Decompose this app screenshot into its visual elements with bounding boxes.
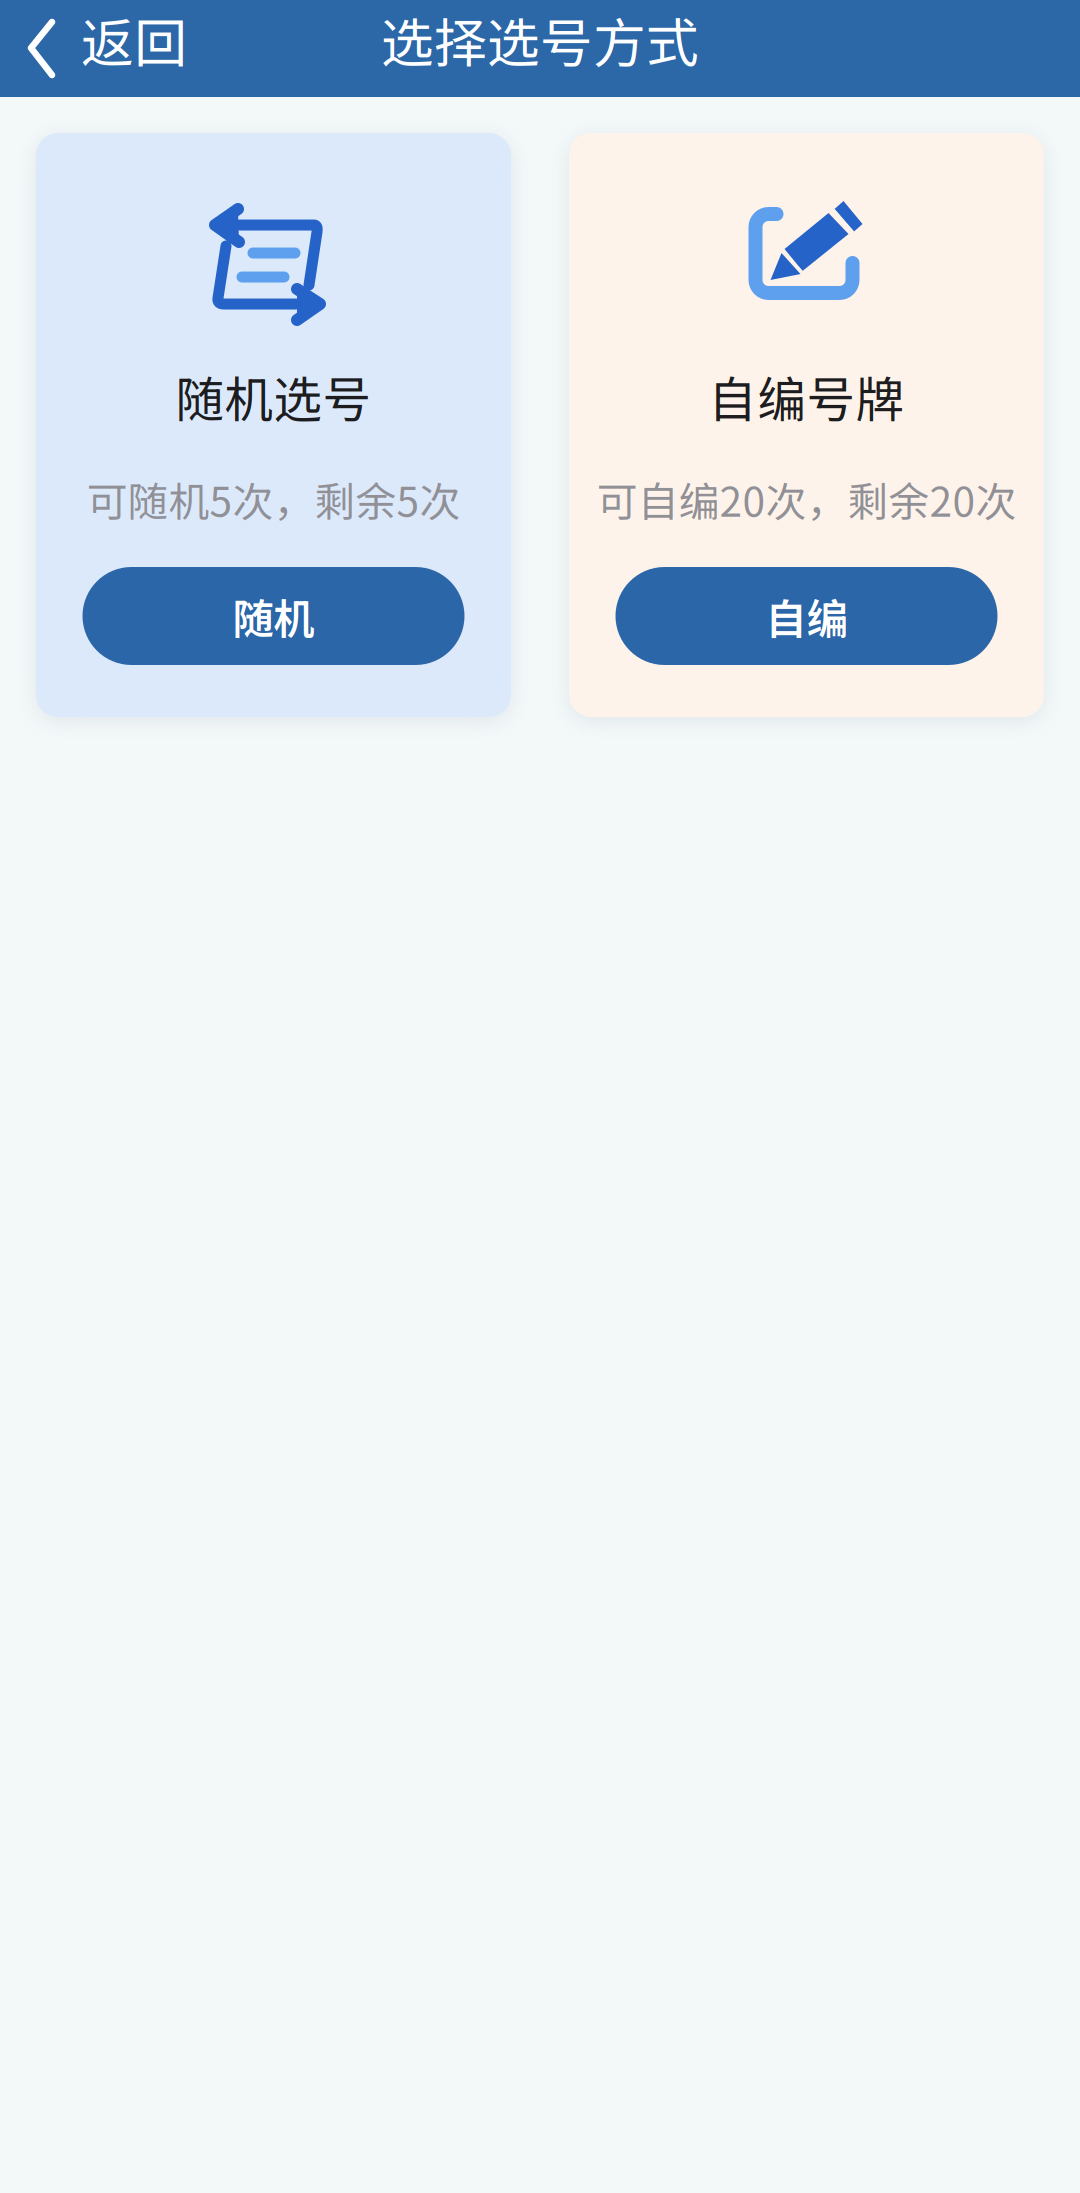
staticText: 选择选号方式 — [381, 1, 699, 78]
button[interactable]: 随机选号 — [36, 133, 511, 717]
staticText: 可随机5次，剩余5次 — [86, 470, 460, 528]
button[interactable]: 返回 — [0, 0, 205, 97]
staticText: 随机选号 — [175, 361, 371, 431]
button[interactable]: 自编 — [615, 567, 997, 665]
staticText: 返回 — [81, 1, 187, 78]
staticText: 随机 — [232, 586, 314, 646]
staticText: 可自编20次，剩余20次 — [596, 470, 1016, 528]
button[interactable]: 随机 — [82, 567, 464, 665]
staticText: 自编 — [765, 586, 847, 646]
staticText: 自编号牌 — [708, 361, 904, 431]
button[interactable]: 自编号牌 — [569, 133, 1044, 717]
